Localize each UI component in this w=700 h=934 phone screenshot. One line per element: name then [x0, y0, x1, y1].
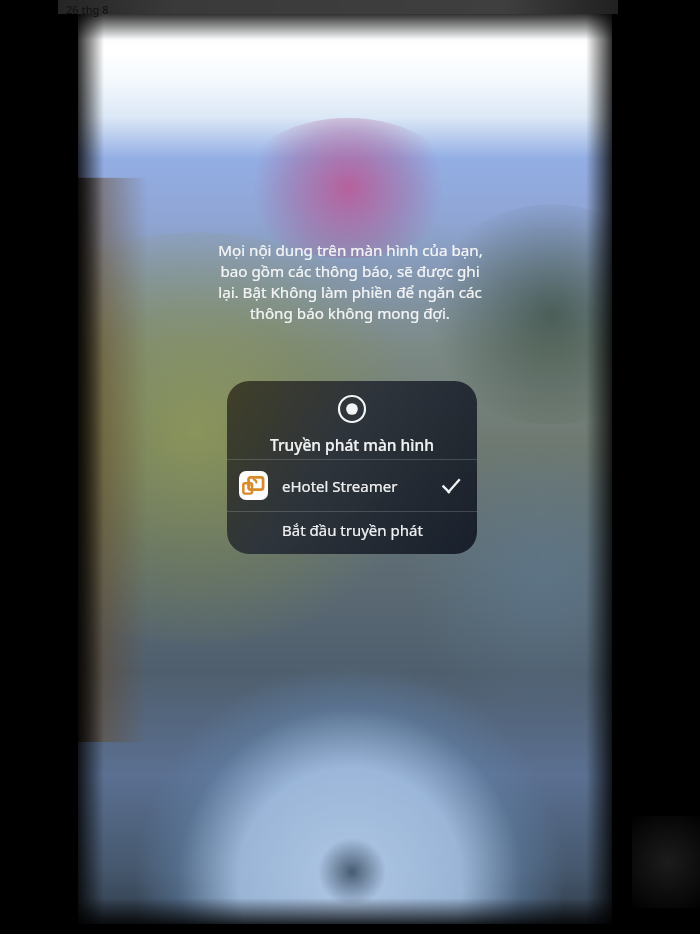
- button[interactable]: Bắt đầu truyền phát: [227, 512, 477, 554]
- staticText: Truyền phát màn hình: [270, 434, 434, 455]
- staticText: eHotel Streamer: [282, 476, 398, 496]
- other: Selected: [441, 476, 461, 496]
- other: Cast: [337, 394, 367, 424]
- staticText: lại. Bật Không làm phiền để ngăn các: [218, 282, 482, 303]
- staticText: Bắt đầu truyền phát: [282, 520, 423, 540]
- staticText: bao gồm các thông báo, sẽ được ghi: [220, 261, 480, 282]
- staticText: 26 thg 8: [66, 2, 109, 17]
- staticText: thông báo không mong đợi.: [250, 303, 450, 324]
- button[interactable]: eHotel Streamer: [227, 460, 477, 511]
- staticText: Mọi nội dung trên màn hình của bạn,: [218, 240, 483, 261]
